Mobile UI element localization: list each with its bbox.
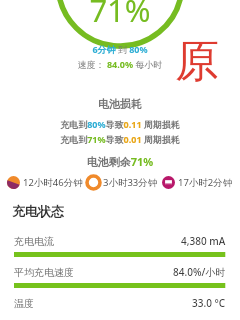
button[interactable]: 充电电流: [5, 234, 235, 257]
staticText: 充电到80%导致0.11 周期损耗: [0, 118, 240, 130]
staticText: 原: [175, 34, 219, 89]
staticText: 充电状态: [12, 203, 64, 219]
staticText: 71%: [0, 0, 240, 31]
staticText: 17小时2分钟: [178, 176, 233, 189]
other: Battery estimate icon: [7, 176, 20, 189]
button[interactable]: Battery estimate icon: [85, 175, 160, 190]
staticText: 33.0 °C: [192, 296, 226, 310]
staticText: 速度： 84.0% 每小时: [0, 58, 240, 70]
other: Battery estimate icon: [87, 176, 100, 189]
button[interactable]: Battery estimate icon: [5, 175, 85, 190]
staticText: 温度: [14, 297, 34, 310]
button[interactable]: 平均充电速度: [5, 265, 235, 288]
staticText: 12小时46分钟: [23, 176, 83, 189]
other: Battery estimate icon: [162, 176, 175, 189]
staticText: 3小时33分钟: [103, 176, 158, 189]
staticText: 电池剩余71%: [0, 154, 240, 169]
staticText: 6分钟 到 80%: [0, 43, 240, 55]
staticText: 84.0%/小时: [173, 265, 226, 279]
staticText: 充电电流: [14, 235, 54, 248]
staticText: 4,380 mA: [181, 234, 226, 248]
button[interactable]: 温度: [5, 296, 235, 313]
staticText: 平均充电速度: [14, 266, 74, 279]
button[interactable]: Battery estimate icon: [160, 175, 235, 190]
staticText: 电池损耗: [0, 97, 240, 111]
staticText: 充电到71%导致0.01 周期损耗: [0, 133, 240, 145]
